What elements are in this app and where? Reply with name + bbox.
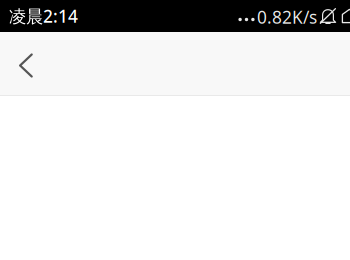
staticText: 凌晨2:14 xyxy=(9,4,78,27)
button[interactable]: Back xyxy=(4,40,48,86)
staticText: 0.82K/s xyxy=(257,5,317,28)
